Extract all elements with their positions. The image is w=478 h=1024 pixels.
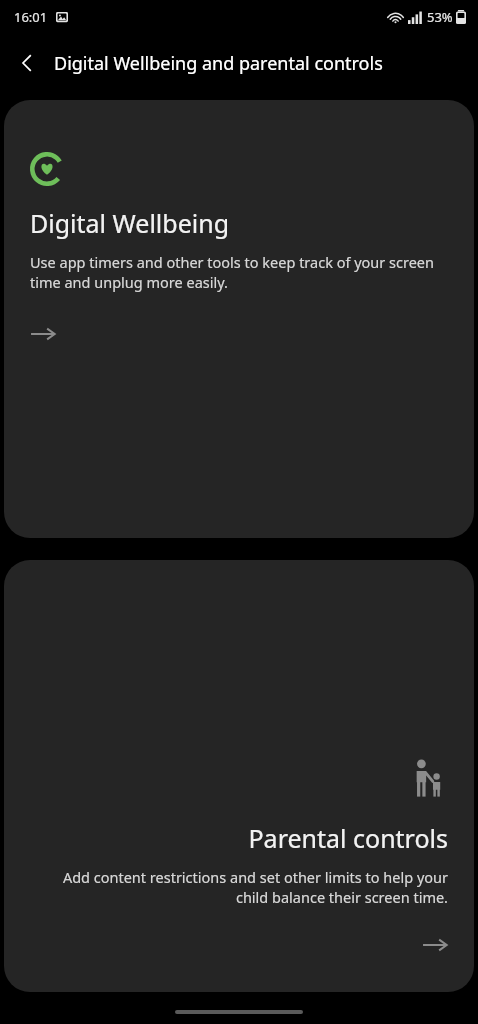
staticText: Digital Wellbeing: [30, 206, 230, 240]
button[interactable]: Back: [0, 36, 54, 90]
staticText: Add content restrictions and set other l…: [30, 867, 448, 908]
staticText: Use app timers and other tools to keep t…: [30, 252, 448, 293]
staticText: 16:01: [14, 8, 48, 26]
button[interactable]: Digital Wellbeing: [4, 100, 474, 538]
staticText: 53%: [427, 8, 453, 26]
button[interactable]: Parental controls: [4, 560, 474, 992]
button[interactable]: Open Parental controls: [414, 928, 448, 962]
staticText: Parental controls: [248, 821, 448, 855]
button[interactable]: Open Digital Wellbeing: [30, 317, 64, 351]
staticText: Digital Wellbeing and parental controls: [54, 51, 383, 76]
